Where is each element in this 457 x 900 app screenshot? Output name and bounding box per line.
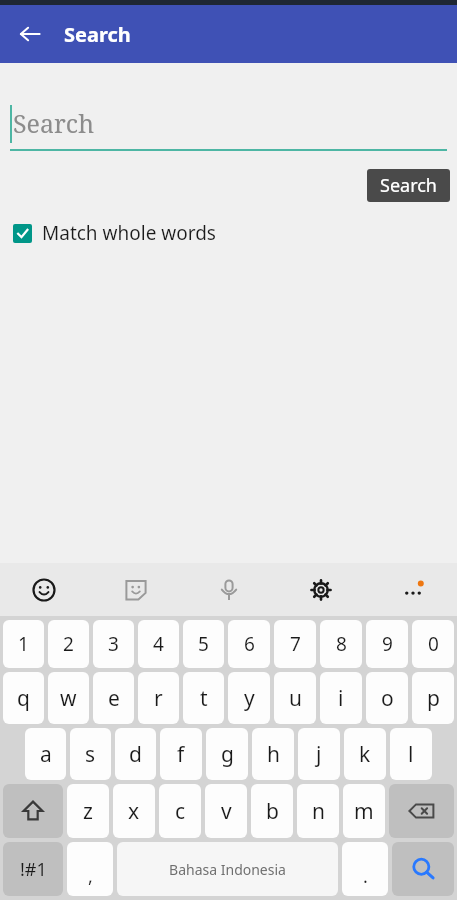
button[interactable]: m — [343, 784, 385, 838]
staticText: x — [128, 797, 140, 826]
button[interactable]: y — [228, 672, 270, 724]
button[interactable]: 9 — [366, 620, 408, 668]
button[interactable]: 2 — [48, 620, 89, 668]
button[interactable]: Emoji — [24, 570, 64, 610]
button[interactable]: q — [3, 672, 44, 724]
button[interactable]: d — [115, 728, 156, 780]
button[interactable]: s — [70, 728, 111, 780]
staticText: g — [221, 740, 234, 769]
button[interactable]: e — [93, 672, 134, 724]
staticText: 6 — [244, 631, 255, 657]
button[interactable]: 5 — [183, 620, 224, 668]
button[interactable]: x — [113, 784, 155, 838]
staticText: j — [316, 740, 322, 769]
button[interactable]: a — [25, 728, 66, 780]
button[interactable]: k — [344, 728, 386, 780]
button[interactable]: More options — [393, 570, 433, 610]
staticText: 0 — [428, 631, 439, 657]
button[interactable]: n — [297, 784, 339, 838]
button[interactable]: 0 — [412, 620, 454, 668]
button[interactable]: Shift — [3, 784, 63, 838]
staticText: d — [129, 740, 142, 769]
button[interactable]: g — [206, 728, 248, 780]
staticText: w — [60, 684, 77, 713]
staticText: r — [154, 684, 163, 713]
button[interactable]: h — [252, 728, 294, 780]
staticText: , — [88, 864, 93, 889]
staticText: n — [312, 797, 325, 826]
button[interactable]: 1 — [3, 620, 44, 668]
staticText: 4 — [153, 631, 164, 657]
button[interactable]: 8 — [320, 620, 362, 668]
button[interactable]: Search — [392, 842, 454, 896]
staticText: k — [359, 740, 371, 769]
staticText: u — [289, 684, 302, 713]
button[interactable]: p — [412, 672, 454, 724]
button[interactable]: . — [342, 842, 388, 896]
button[interactable]: z — [67, 784, 109, 838]
staticText: z — [83, 797, 93, 826]
button[interactable]: w — [48, 672, 89, 724]
staticText: q — [17, 684, 30, 713]
button[interactable]: l — [390, 728, 432, 780]
staticText: Match whole words — [42, 220, 216, 246]
button[interactable]: o — [366, 672, 408, 724]
staticText: 7 — [290, 631, 301, 657]
button[interactable]: v — [205, 784, 247, 838]
button[interactable]: b — [251, 784, 293, 838]
staticText: e — [108, 684, 120, 713]
button[interactable]: , — [67, 842, 113, 896]
button[interactable]: 3 — [93, 620, 134, 668]
staticText: Search — [13, 106, 95, 140]
staticText: h — [267, 740, 280, 769]
button[interactable]: !#1 — [3, 842, 63, 896]
button[interactable]: Voice input — [209, 570, 249, 610]
staticText: 1 — [18, 631, 29, 657]
button[interactable]: 6 — [228, 620, 270, 668]
button[interactable]: 7 — [274, 620, 316, 668]
staticText: o — [381, 684, 394, 713]
button[interactable]: Bahasa Indonesia — [117, 842, 338, 896]
button[interactable]: r — [138, 672, 179, 724]
staticText: Bahasa Indonesia — [169, 860, 286, 879]
button[interactable]: j — [298, 728, 340, 780]
button[interactable]: Backspace — [389, 784, 454, 838]
staticText: . — [363, 864, 368, 889]
staticText: 3 — [108, 631, 119, 657]
button[interactable]: Search — [367, 169, 450, 202]
staticText: f — [177, 740, 185, 769]
staticText: y — [244, 684, 255, 713]
staticText: a — [40, 740, 52, 769]
button[interactable]: t — [183, 672, 224, 724]
button[interactable]: u — [274, 672, 316, 724]
staticText: l — [408, 740, 414, 769]
staticText: Search — [64, 21, 131, 48]
staticText: c — [175, 797, 186, 826]
staticText: v — [221, 797, 232, 826]
staticText: 8 — [336, 631, 347, 657]
button[interactable]: Stickers — [116, 570, 156, 610]
button[interactable]: Search — [10, 99, 447, 151]
staticText: 2 — [63, 631, 74, 657]
staticText: p — [427, 684, 440, 713]
button[interactable]: Keyboard settings — [301, 570, 341, 610]
button[interactable]: Match whole words — [0, 218, 457, 248]
button[interactable]: f — [160, 728, 202, 780]
staticText: m — [354, 797, 374, 826]
button[interactable]: Back — [8, 12, 52, 56]
staticText: i — [338, 684, 344, 713]
staticText: !#1 — [20, 857, 47, 882]
staticText: b — [266, 797, 279, 826]
staticText: 5 — [198, 631, 209, 657]
staticText: t — [200, 684, 208, 713]
staticText: s — [85, 740, 96, 769]
staticText: 9 — [382, 631, 393, 657]
staticText: Search — [380, 173, 437, 198]
button[interactable]: c — [159, 784, 201, 838]
button[interactable]: i — [320, 672, 362, 724]
button[interactable]: 4 — [138, 620, 179, 668]
